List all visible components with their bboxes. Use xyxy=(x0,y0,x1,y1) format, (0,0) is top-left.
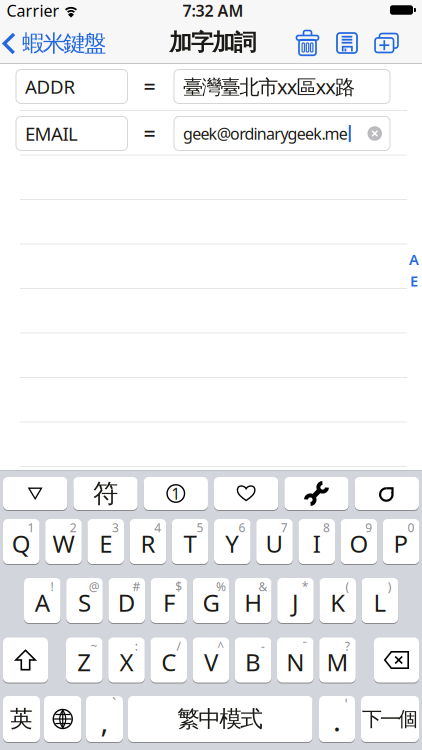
button[interactable]: S xyxy=(66,578,103,623)
staticText: N xyxy=(286,646,304,678)
button[interactable]: W xyxy=(45,519,82,564)
button[interactable]: O xyxy=(341,519,377,564)
button[interactable]: D xyxy=(108,578,145,623)
button[interactable]: R xyxy=(130,519,166,564)
staticText: @ xyxy=(89,578,100,594)
staticText: W xyxy=(52,528,74,559)
staticText: ˉ xyxy=(303,638,308,654)
staticText: 9 xyxy=(365,519,372,535)
staticText: G xyxy=(203,587,220,618)
button[interactable]: J xyxy=(277,578,314,623)
staticText: ADDR xyxy=(25,74,75,99)
button[interactable]: Y xyxy=(214,519,251,564)
button[interactable] xyxy=(355,477,419,510)
button[interactable]: . xyxy=(319,696,355,742)
staticText: 0 xyxy=(407,519,414,535)
staticText: I xyxy=(313,528,321,559)
staticText: 5 xyxy=(196,519,203,535)
staticText: D xyxy=(118,587,136,618)
staticText: = xyxy=(143,72,155,101)
staticText: . xyxy=(333,700,341,739)
button[interactable]: , xyxy=(86,696,123,742)
button[interactable]: 臺灣臺北市xx區xx路 xyxy=(174,69,390,103)
staticText: Y xyxy=(225,528,239,559)
button[interactable]: 英 xyxy=(3,696,40,742)
button[interactable]: M xyxy=(319,637,356,682)
staticText: V xyxy=(204,646,218,678)
button[interactable]: 符 xyxy=(73,477,138,510)
button[interactable]: 繁中模式 xyxy=(128,696,312,742)
staticText: # xyxy=(132,578,140,594)
button[interactable] xyxy=(3,477,67,510)
staticText: 7:32 AM xyxy=(182,0,243,21)
button[interactable] xyxy=(3,637,48,682)
button[interactable]: 1 xyxy=(144,477,208,510)
button[interactable]: H xyxy=(235,578,272,623)
staticText: 加字加詞 xyxy=(169,29,257,56)
staticText: H xyxy=(244,587,262,618)
staticText: A xyxy=(409,249,419,269)
button[interactable] xyxy=(336,32,357,53)
staticText: ^ xyxy=(217,638,224,654)
button[interactable]: Z xyxy=(66,637,103,682)
staticText: R xyxy=(140,528,155,559)
staticText: S xyxy=(78,587,91,618)
button[interactable]: T xyxy=(172,519,208,564)
button[interactable]: I xyxy=(298,519,335,564)
button[interactable]: F xyxy=(151,578,187,623)
button[interactable] xyxy=(214,477,278,510)
button[interactable]: G xyxy=(193,578,229,623)
staticText: 8 xyxy=(323,519,330,535)
staticText: EMAIL xyxy=(25,121,78,146)
button[interactable]: L xyxy=(362,578,398,623)
staticText: E xyxy=(99,528,112,559)
staticText: 下一個 xyxy=(362,707,418,731)
button[interactable]: EMAIL xyxy=(16,116,127,150)
button[interactable]: Q xyxy=(3,519,40,564)
button[interactable]: V xyxy=(193,637,229,682)
button[interactable]: C xyxy=(150,637,187,682)
staticText: ! xyxy=(51,578,54,594)
staticText: - xyxy=(261,638,265,654)
staticText: T xyxy=(184,528,197,559)
staticText: = xyxy=(143,119,155,148)
button[interactable]: N xyxy=(277,637,314,682)
staticText: 4 xyxy=(154,519,161,535)
button[interactable]: geek@ordinarygeek.me xyxy=(174,116,390,150)
button[interactable]: E xyxy=(87,519,124,564)
button[interactable]: 下一個 xyxy=(361,696,419,742)
staticText: P xyxy=(394,528,409,559)
staticText: Carrier xyxy=(6,0,59,21)
staticText: Z xyxy=(77,646,91,678)
button[interactable]: A xyxy=(24,578,61,623)
button[interactable] xyxy=(295,29,319,55)
button[interactable] xyxy=(367,126,382,141)
button[interactable] xyxy=(374,637,419,682)
staticText: B xyxy=(245,646,261,678)
staticText: 臺灣臺北市xx區xx路 xyxy=(183,73,355,100)
button[interactable]: ADDR xyxy=(16,69,127,103)
button[interactable] xyxy=(284,477,349,510)
staticText: U xyxy=(265,528,283,559)
button[interactable]: U xyxy=(256,519,293,564)
staticText: C xyxy=(161,646,176,678)
staticText: 英 xyxy=(10,705,33,733)
staticText: geek@ordinarygeek.me xyxy=(183,123,348,144)
button[interactable]: 蝦米鍵盤 xyxy=(2,30,107,57)
button[interactable] xyxy=(374,33,398,53)
button[interactable] xyxy=(44,696,81,742)
button[interactable]: A xyxy=(409,249,419,290)
staticText: 1 xyxy=(28,519,35,535)
staticText: ) xyxy=(388,578,392,594)
staticText: F xyxy=(163,587,175,618)
button[interactable]: K xyxy=(319,578,356,623)
staticText: 1 xyxy=(171,483,180,504)
button[interactable]: P xyxy=(383,519,419,564)
staticText: J xyxy=(292,587,299,618)
button[interactable]: B xyxy=(235,637,271,682)
button[interactable]: X xyxy=(108,637,145,682)
staticText: ~ xyxy=(91,638,98,654)
staticText: ' xyxy=(344,693,347,713)
staticText: & xyxy=(259,578,268,594)
staticText: A xyxy=(35,587,50,618)
